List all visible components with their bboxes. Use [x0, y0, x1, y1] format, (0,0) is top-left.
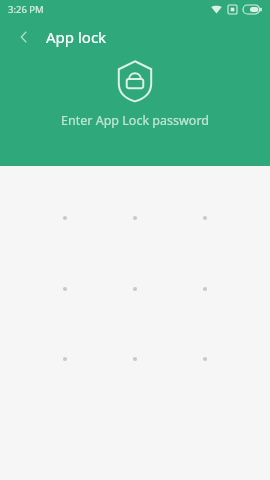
- staticText: App lock: [46, 27, 107, 47]
- staticText: 3:26 PM: [8, 3, 44, 16]
- staticText: Enter App Lock password: [0, 112, 270, 129]
- button[interactable]: Back: [8, 21, 40, 53]
